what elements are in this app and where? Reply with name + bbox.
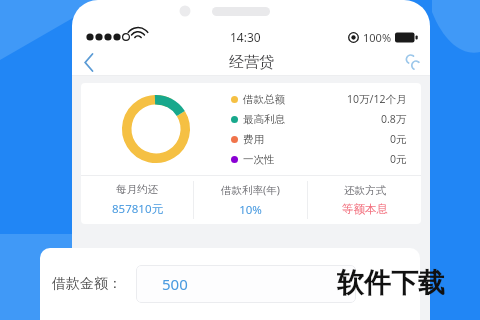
staticText: 费用	[243, 133, 264, 146]
button[interactable]: 每月约还	[81, 176, 193, 224]
button[interactable]: 500	[136, 265, 356, 303]
staticText: 最高利息	[243, 113, 285, 126]
button[interactable]: 借款利率(年)	[194, 176, 307, 224]
staticText: 还款方式	[344, 184, 386, 197]
staticText: 借款利率(年)	[221, 183, 280, 197]
staticText: 500	[162, 274, 188, 294]
staticText: 14:30	[230, 29, 261, 45]
staticText: 每月约还	[116, 183, 158, 196]
staticText: 借款金额：	[52, 275, 122, 293]
staticText: 0元	[390, 132, 407, 146]
staticText: 等额本息	[342, 202, 388, 216]
staticText: 借款总额	[243, 93, 285, 106]
staticText: 软件下载	[337, 266, 445, 300]
staticText: 10%	[239, 202, 262, 218]
staticText: 0.8万	[381, 112, 407, 126]
button[interactable]: Call	[396, 48, 430, 76]
button[interactable]: 还款方式	[308, 176, 421, 224]
staticText: 10万/12个月	[347, 92, 407, 106]
staticText: 100%	[363, 30, 392, 45]
button[interactable]: Back	[72, 48, 106, 76]
staticText: 857810元	[112, 201, 163, 217]
staticText: 0元	[390, 152, 407, 166]
staticText: 一次性	[243, 153, 275, 166]
staticText: 经营贷	[229, 53, 274, 72]
